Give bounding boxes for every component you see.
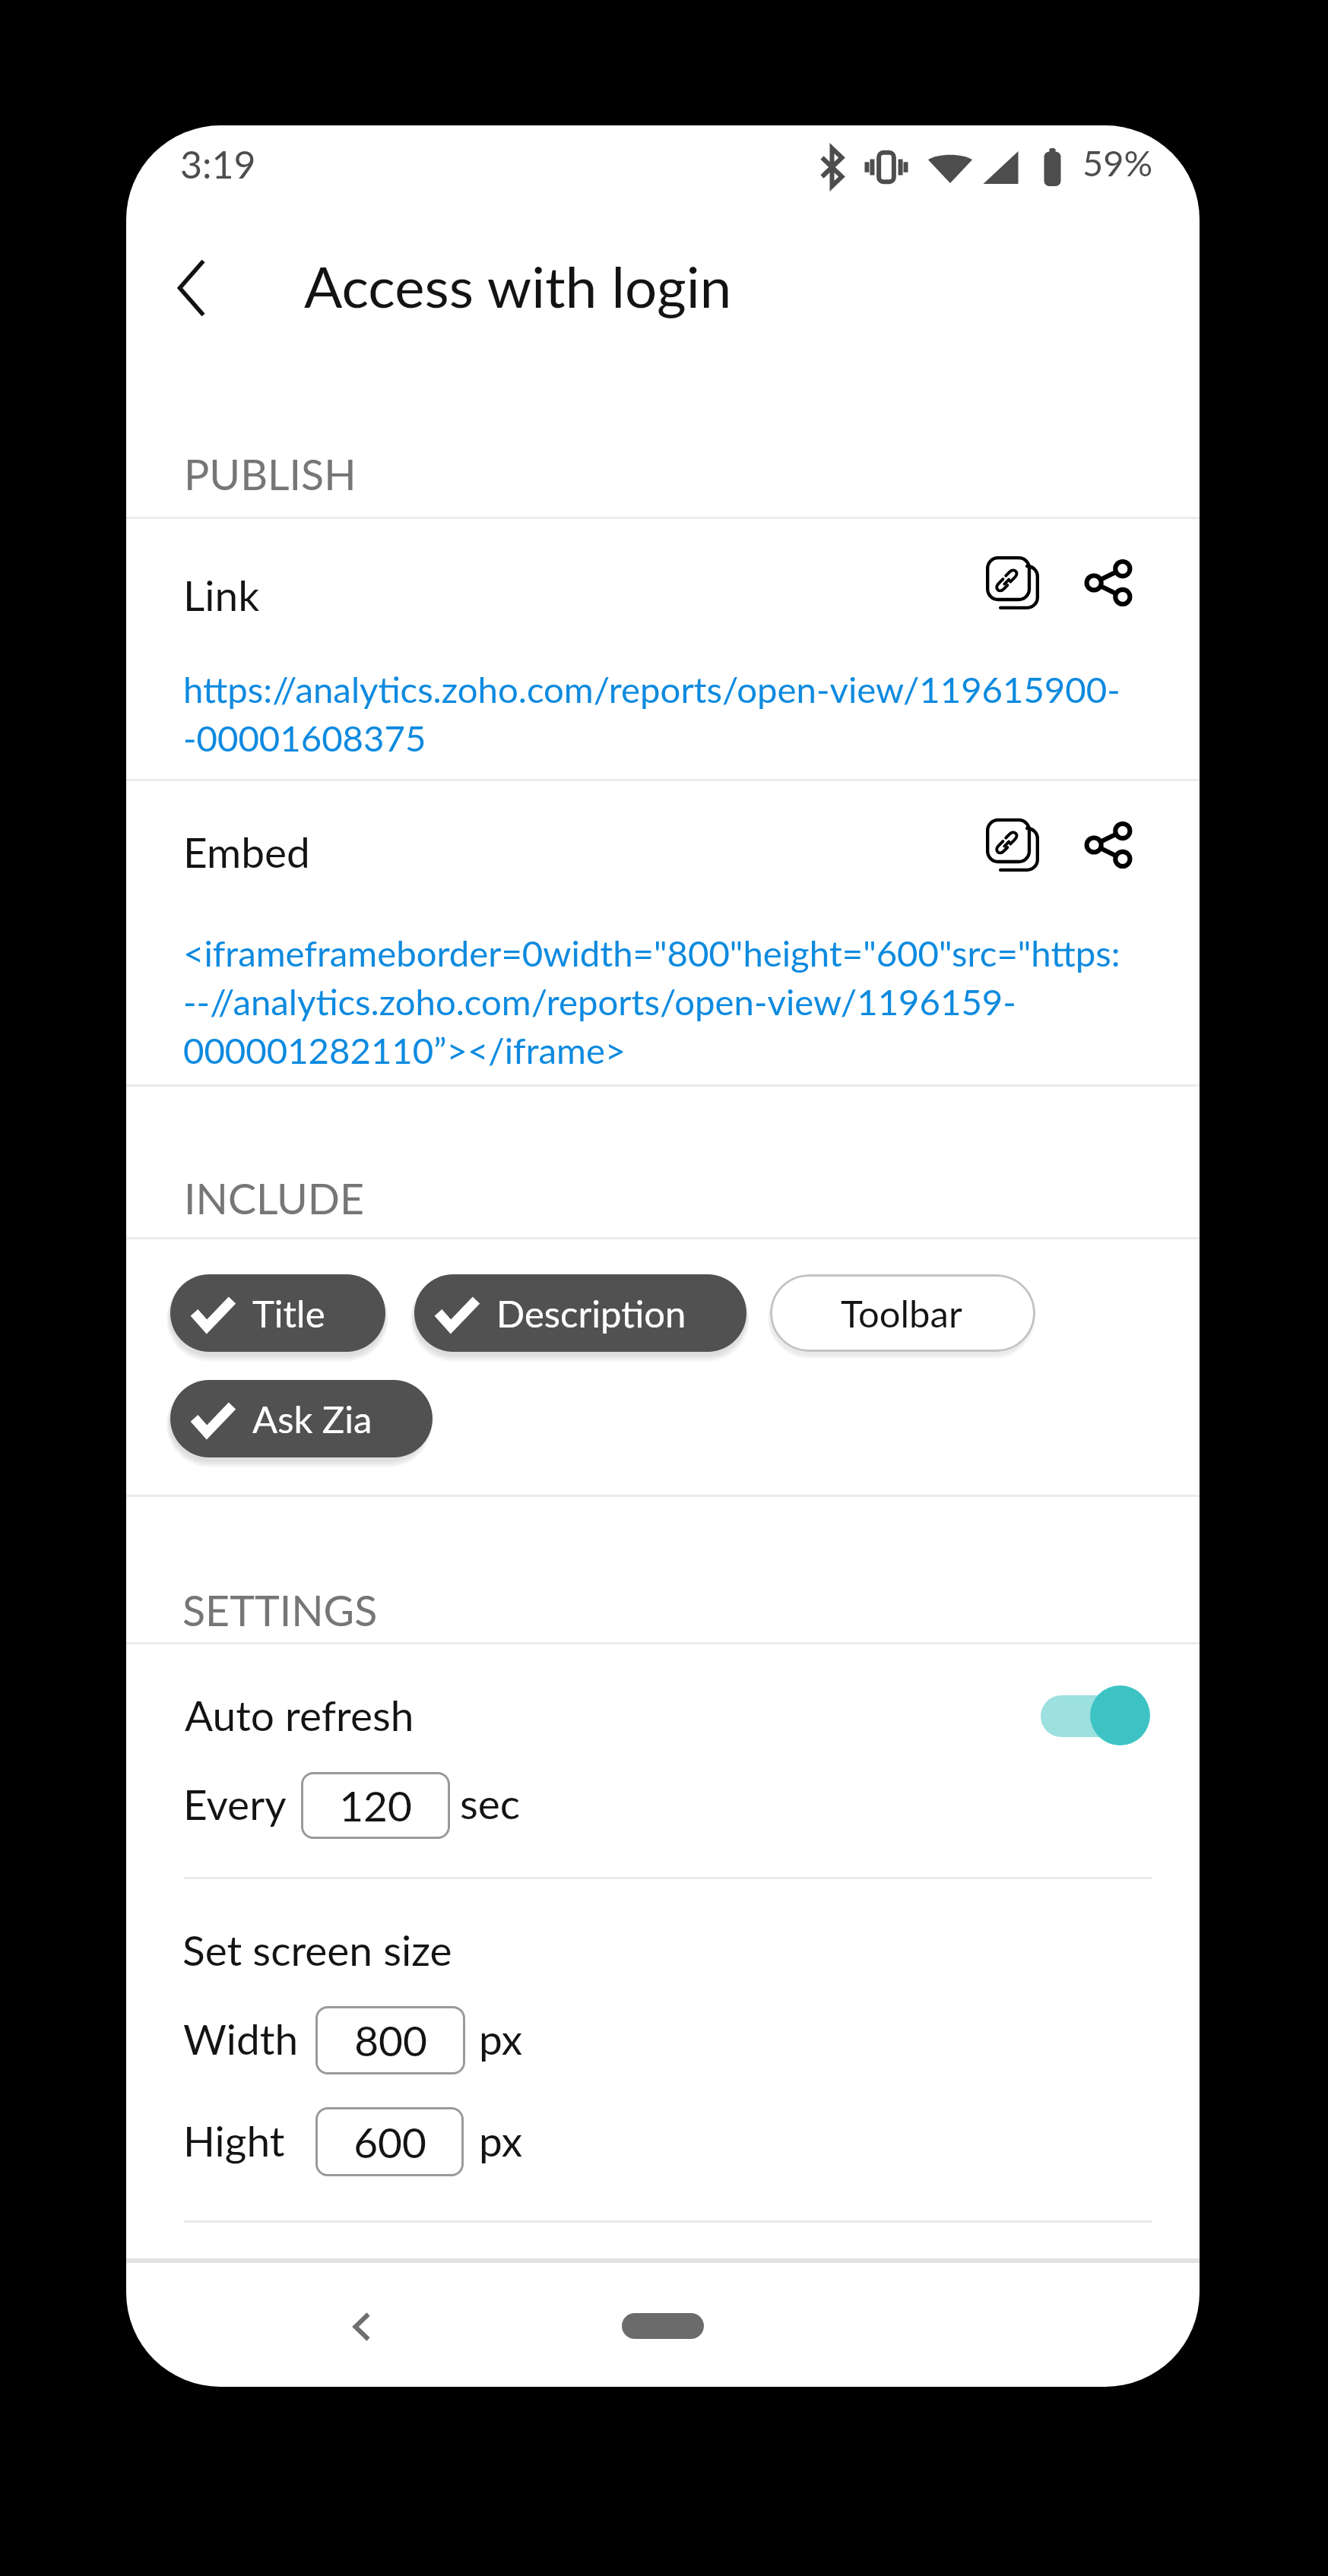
staticText: Width [183, 2014, 299, 2064]
staticText: sec [460, 1778, 521, 1828]
staticText: INCLUDE [184, 1172, 365, 1223]
button[interactable]: Home [622, 2313, 704, 2339]
staticText: Title [252, 1291, 325, 1336]
button[interactable]: 600 [315, 2107, 464, 2176]
button[interactable]: 120 [301, 1772, 450, 1839]
button[interactable]: Copy embed code [970, 802, 1055, 888]
staticText: Toolbar [841, 1291, 962, 1336]
staticText: Set screen size [182, 1925, 452, 1975]
staticText: https://analytics.zoho.com/reports/open-… [183, 667, 1120, 759]
button[interactable]: Copy link [970, 540, 1055, 625]
staticText: px [479, 2014, 523, 2064]
staticText: <iframeframeborder=0width="800"height="6… [183, 931, 1120, 1071]
staticText: 800 [354, 2015, 427, 2065]
staticText: 600 [353, 2117, 426, 2167]
staticText: SETTINGS [182, 1584, 378, 1635]
button[interactable]: Toolbar [770, 1274, 1035, 1352]
button[interactable]: Share link [1067, 540, 1150, 625]
staticText: Access with login [304, 252, 732, 319]
staticText: 3:19 [180, 141, 256, 187]
staticText: Description [496, 1291, 686, 1336]
staticText: Hight [183, 2116, 285, 2166]
staticText: PUBLISH [184, 448, 357, 499]
staticText: Ask Zia [252, 1397, 372, 1441]
button[interactable]: Description [414, 1274, 746, 1352]
staticText: Link [183, 570, 260, 620]
staticText: 59% [1082, 141, 1153, 184]
button[interactable]: Ask Zia [170, 1380, 433, 1457]
button[interactable]: Back [325, 2290, 398, 2363]
button[interactable]: Share embed code [1067, 802, 1150, 888]
button[interactable]: Auto refresh [1030, 1678, 1161, 1752]
staticText: px [479, 2116, 523, 2166]
button[interactable]: Back [154, 236, 229, 340]
staticText: 120 [339, 1780, 412, 1831]
staticText: Embed [183, 827, 310, 877]
staticText: Auto refresh [185, 1690, 414, 1740]
button[interactable]: Title [170, 1274, 385, 1352]
staticText: Every [183, 1779, 287, 1829]
button[interactable]: 800 [315, 2006, 465, 2074]
